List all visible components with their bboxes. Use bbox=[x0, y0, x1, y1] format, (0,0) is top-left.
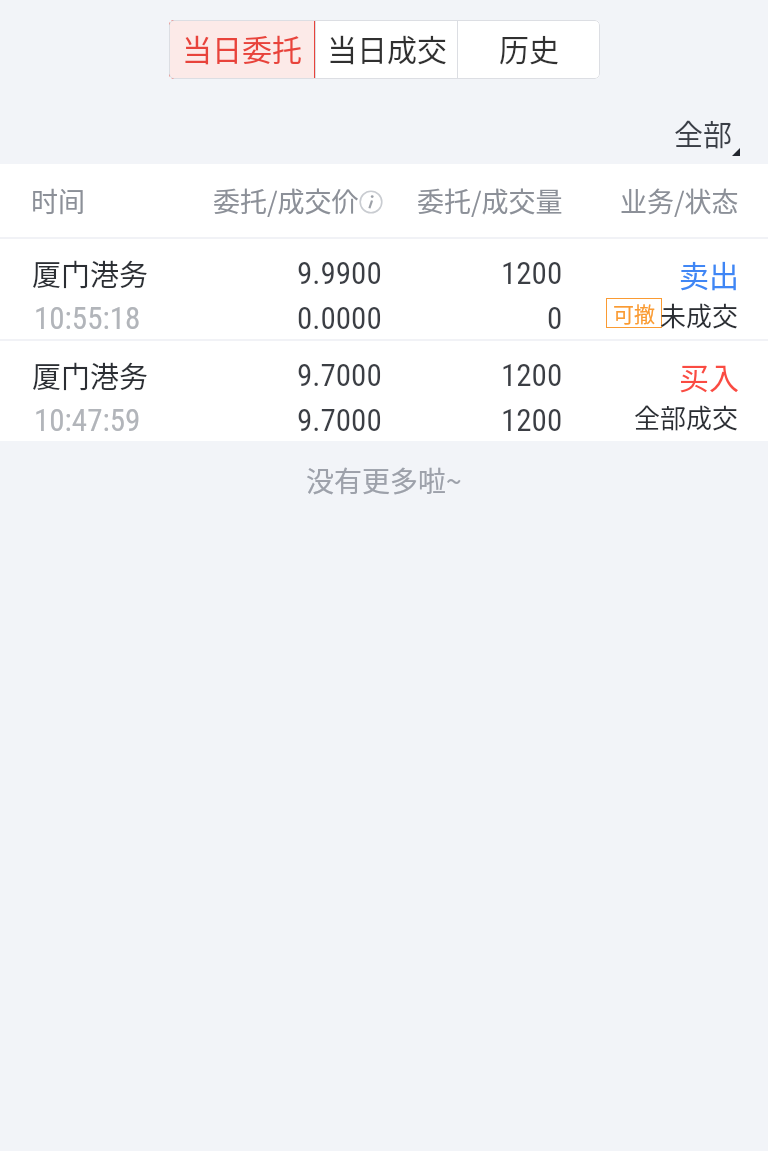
staticText: 1200 bbox=[501, 402, 563, 438]
staticText: 厦门港务 bbox=[32, 252, 149, 294]
staticText: 当日委托 bbox=[182, 26, 302, 69]
staticText: 9.7000 bbox=[297, 402, 382, 438]
staticText: 时间 bbox=[31, 181, 85, 220]
staticText: 历史 bbox=[499, 26, 559, 69]
staticText: 可撤 bbox=[613, 298, 655, 328]
staticText: 业务/状态 bbox=[620, 181, 739, 220]
staticText: 全部 bbox=[674, 112, 733, 154]
staticText: 0.0000 bbox=[297, 300, 382, 336]
button[interactable]: 当日委托 bbox=[169, 20, 315, 79]
staticText: 1200 bbox=[501, 357, 563, 393]
button[interactable]: 当日成交 bbox=[316, 20, 457, 79]
staticText: 买入 bbox=[679, 354, 739, 397]
staticText: 厦门港务 bbox=[32, 354, 149, 396]
other: Info bbox=[359, 189, 383, 213]
staticText: 10:47:59 bbox=[34, 402, 141, 438]
staticText: 全部成交 bbox=[634, 398, 739, 436]
staticText: 没有更多啦~ bbox=[306, 460, 462, 501]
staticText: 9.7000 bbox=[297, 357, 382, 393]
button[interactable]: 全部 bbox=[646, 106, 768, 156]
button[interactable]: 厦门港务 bbox=[0, 341, 768, 441]
staticText: 10:55:18 bbox=[34, 300, 141, 336]
staticText: 卖出 bbox=[679, 252, 739, 295]
button[interactable]: 厦门港务 bbox=[0, 239, 768, 339]
staticText: 委托/成交价 bbox=[213, 181, 359, 220]
staticText: 未成交 bbox=[660, 296, 739, 334]
staticText: 当日成交 bbox=[327, 26, 447, 69]
button[interactable]: 历史 bbox=[458, 20, 600, 79]
staticText: 9.9900 bbox=[297, 255, 382, 291]
staticText: 委托/成交量 bbox=[417, 181, 563, 220]
button[interactable]: 可撤 bbox=[606, 298, 662, 328]
staticText: 0 bbox=[547, 300, 563, 336]
staticText: 1200 bbox=[501, 255, 563, 291]
